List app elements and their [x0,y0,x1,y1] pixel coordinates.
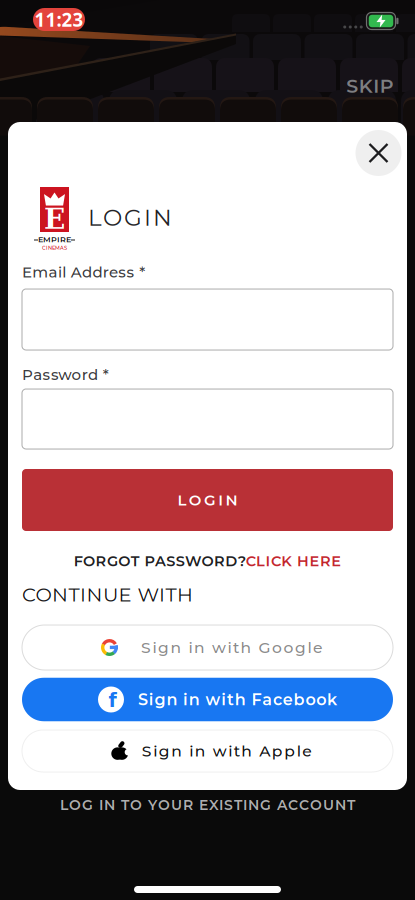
staticText: Email Address * [22,263,145,281]
staticText: f [108,689,116,711]
staticText: E [44,203,65,235]
button[interactable]: LOGIN [22,469,393,531]
button[interactable]: FORGOT PASSWORD? [74,552,341,570]
staticText: Sign in with Facebook [138,690,337,709]
staticText: EMPIRE [38,235,71,244]
staticText: I [218,491,223,509]
staticText: Password * [22,365,109,384]
staticText: O [189,491,202,509]
staticText: CINEMAS [42,245,67,251]
button[interactable]: SKIP [346,74,394,98]
staticText: L [178,491,187,509]
button[interactable]: Sign in with Apple [22,730,393,772]
staticText: SKIP [346,74,394,98]
button[interactable]: Password * [22,389,393,449]
staticText: Sign in with Google [141,638,322,657]
staticText: 11:23 [34,7,83,32]
staticText: G [204,491,216,509]
button[interactable]: Sign in with Google [22,625,393,670]
staticText: FORGOT PASSWORD? [74,552,246,570]
staticText: CLICK HERE [246,552,341,570]
staticText: LOG IN TO YOUR EXISTING ACCOUNT [60,796,355,814]
button[interactable]: Email Address * [22,289,393,350]
staticText: LOGIN [88,203,172,231]
staticText: N [225,491,237,509]
button[interactable]: f [22,678,393,721]
staticText: Sign in with Apple [142,742,311,760]
staticText: CONTINUE WITH [22,583,193,606]
button[interactable]: Close [355,130,401,176]
